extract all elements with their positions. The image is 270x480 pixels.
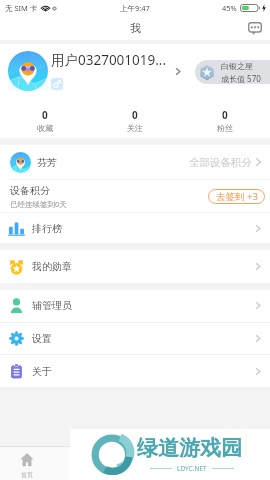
staticText: 无 SIM 卡 — [5, 3, 38, 13]
staticText: 绿道游戏园 — [137, 435, 242, 461]
staticText: 关于 — [32, 365, 52, 378]
staticText: 上午9:47 — [120, 3, 150, 13]
staticText: 收藏 — [37, 123, 53, 133]
staticText: 45% — [222, 3, 237, 13]
button[interactable]: 关于 — [0, 355, 270, 387]
button[interactable]: 辅管理员 — [0, 290, 270, 321]
button[interactable]: 我的勋章 — [0, 250, 270, 283]
staticText: 白银之星 — [221, 61, 253, 71]
staticText: 全部设备积分 — [189, 156, 252, 169]
staticText: 已经连续签到0天 — [10, 199, 67, 209]
button[interactable]: 0 — [0, 98, 90, 138]
button[interactable]: 我 — [216, 447, 270, 480]
button[interactable]: 首页 — [0, 447, 54, 480]
staticText: 0 — [42, 108, 48, 122]
button[interactable]: 白银之星 — [195, 60, 270, 84]
staticText: 我的勋章 — [32, 260, 72, 273]
button[interactable]: 去签到 +3 — [208, 189, 265, 204]
button[interactable]: 消息 — [162, 447, 216, 480]
button[interactable]: 用户0327001019... — [0, 44, 270, 98]
staticText: 辅管理员 — [32, 299, 72, 312]
button[interactable]: 发现 — [108, 447, 162, 480]
staticText: 0 — [132, 108, 138, 122]
staticText: LDYC.NET — [177, 464, 207, 473]
button[interactable]: Messages — [240, 16, 270, 40]
button[interactable]: 0 — [180, 98, 270, 138]
staticText: 0 — [222, 108, 228, 122]
staticText: 去签到 +3 — [216, 190, 258, 203]
staticText: 首页 — [21, 471, 33, 479]
staticText: 我 — [130, 21, 141, 35]
button[interactable]: 排行榜 — [0, 213, 270, 243]
button[interactable]: 0 — [90, 98, 180, 138]
staticText: 排行榜 — [32, 222, 62, 235]
staticText: 设置 — [32, 332, 52, 345]
staticText: 芬芳 — [37, 156, 57, 169]
staticText: 关注 — [127, 123, 143, 133]
staticText: 粉丝 — [217, 123, 233, 133]
button[interactable]: 设备 — [54, 447, 108, 480]
staticText: 设备积分 — [10, 184, 50, 197]
button[interactable]: 设置 — [0, 323, 270, 353]
staticText: 用户0327001019... — [51, 51, 167, 69]
staticText: 成长值 570 — [221, 73, 261, 84]
button[interactable]: 芬芳 — [0, 145, 270, 179]
